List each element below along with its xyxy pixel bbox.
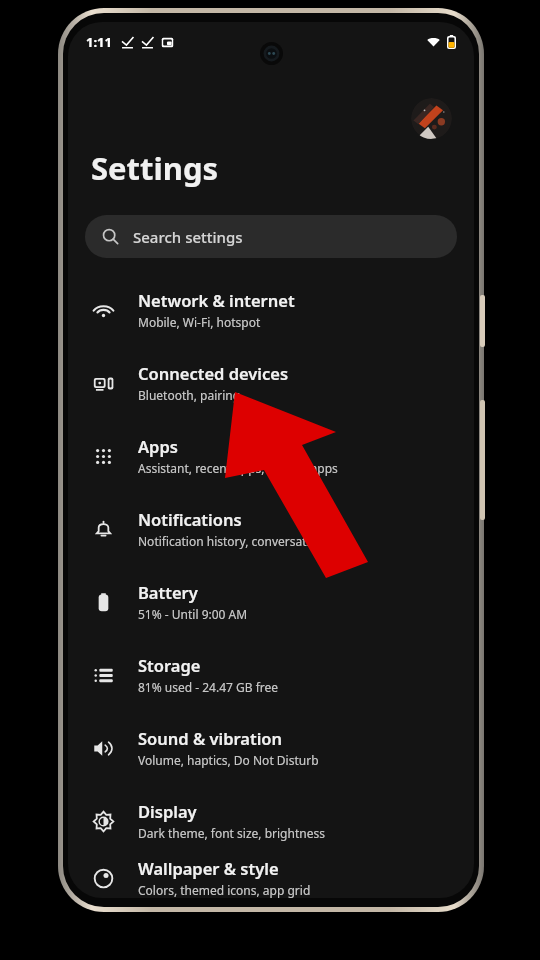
staticText: Volume, haptics, Do Not Disturb (138, 752, 319, 768)
button[interactable]: Wallpaper & style (68, 857, 474, 898)
button[interactable]: Notifications (68, 492, 474, 565)
staticText: Storage (138, 654, 201, 676)
staticText: Display (138, 800, 197, 822)
staticText: Dark theme, font size, brightness (138, 825, 325, 841)
staticText: Notification history, conversations (138, 533, 331, 549)
button[interactable]: Account avatar (411, 98, 452, 139)
staticText: Bluetooth, pairing (138, 387, 241, 403)
staticText: Apps (138, 435, 178, 457)
staticText: Network & internet (138, 289, 295, 311)
staticText: Notifications (138, 508, 242, 530)
staticText: Wallpaper & style (138, 857, 279, 879)
button[interactable]: Connected devices (68, 346, 474, 419)
staticText: 1:11 (86, 33, 112, 51)
staticText: Mobile, Wi-Fi, hotspot (138, 314, 261, 330)
button[interactable]: Display (68, 784, 474, 857)
button[interactable]: Apps (68, 419, 474, 492)
button[interactable]: Sound & vibration (68, 711, 474, 784)
staticText: Sound & vibration (138, 727, 283, 749)
button[interactable]: Storage (68, 638, 474, 711)
button[interactable]: Battery (68, 565, 474, 638)
staticText: Assistant, recent apps, default apps (138, 460, 338, 476)
staticText: 51% - Until 9:00 AM (138, 606, 248, 622)
staticText: Search settings (133, 227, 243, 247)
staticText: Settings (91, 147, 219, 189)
staticText: Colors, themed icons, app grid (138, 882, 311, 898)
staticText: 81% used - 24.47 GB free (138, 679, 279, 695)
staticText: Battery (138, 581, 198, 603)
button[interactable]: Network & internet (68, 273, 474, 346)
button[interactable]: Search settings (85, 215, 457, 258)
staticText: Connected devices (138, 362, 289, 384)
